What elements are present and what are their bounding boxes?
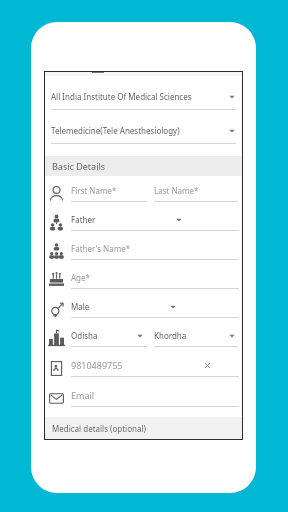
button[interactable]: Select department	[44, 119, 243, 150]
staticText: Father	[71, 214, 96, 225]
staticText: All India Institute Of Medical Sciences	[51, 91, 192, 102]
button[interactable]: Gender	[44, 295, 243, 324]
button[interactable]: Medical details (optional)	[44, 417, 243, 439]
staticText: Last Name*	[154, 185, 199, 196]
button[interactable]: Basic Details	[44, 156, 243, 176]
button[interactable]: Age	[44, 266, 243, 295]
button[interactable]: Email	[44, 383, 243, 413]
staticText: Male	[71, 301, 90, 312]
staticText: Email	[71, 389, 95, 401]
staticText: Father's Name*	[71, 243, 131, 254]
button[interactable]: Select hospital	[44, 85, 243, 116]
button[interactable]: Mobile number	[44, 353, 243, 383]
button[interactable]: Last Name	[154, 185, 238, 202]
staticText: Medical details (optional)	[52, 423, 146, 434]
staticText: Age*	[71, 272, 90, 283]
button[interactable]: State	[71, 330, 147, 347]
staticText: Khordha	[154, 330, 187, 341]
button[interactable]: Father's name	[44, 237, 243, 266]
staticText: First Name*	[71, 185, 117, 196]
staticText: Basic Details	[52, 160, 106, 172]
staticText: Telemedicine(Tele Anesthesiology)	[51, 125, 180, 136]
button[interactable]: Relation	[44, 208, 243, 237]
button[interactable]: First Name	[71, 185, 147, 202]
staticText: 9810489755	[71, 359, 123, 371]
staticText: Odisha	[71, 330, 98, 341]
button[interactable]: District	[154, 330, 238, 347]
button[interactable]: Clear	[202, 360, 212, 370]
